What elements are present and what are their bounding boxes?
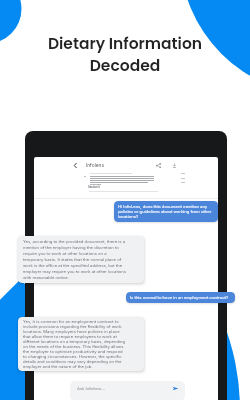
button[interactable]: Hi InfoLens, does this document mention … [114,201,218,222]
button[interactable]: Download [169,160,179,170]
staticText: Ask Infolens... [77,386,105,391]
staticText: Is this normal to have in an employment … [130,295,229,300]
staticText: Infolens [86,162,104,168]
button[interactable]: Ask Infolens... [70,381,185,400]
button[interactable]: Yes, according to the provided document,… [18,236,144,283]
staticText: Yes, it is common for an employment cont… [23,319,126,369]
staticText: Yes, according to the provided document,… [23,239,126,280]
button[interactable]: Back [70,160,80,170]
button[interactable]: Yes, it is common for an employment cont… [18,317,144,371]
button[interactable]: Send [170,383,180,393]
staticText: Hi InfoLens, does this document mention … [118,204,212,219]
staticText: Dietary Information Decoded [0,33,250,76]
button[interactable]: Is this normal to have in an employment … [126,292,235,303]
staticText: Section 5 [88,185,100,188]
button[interactable]: Share [153,160,163,170]
